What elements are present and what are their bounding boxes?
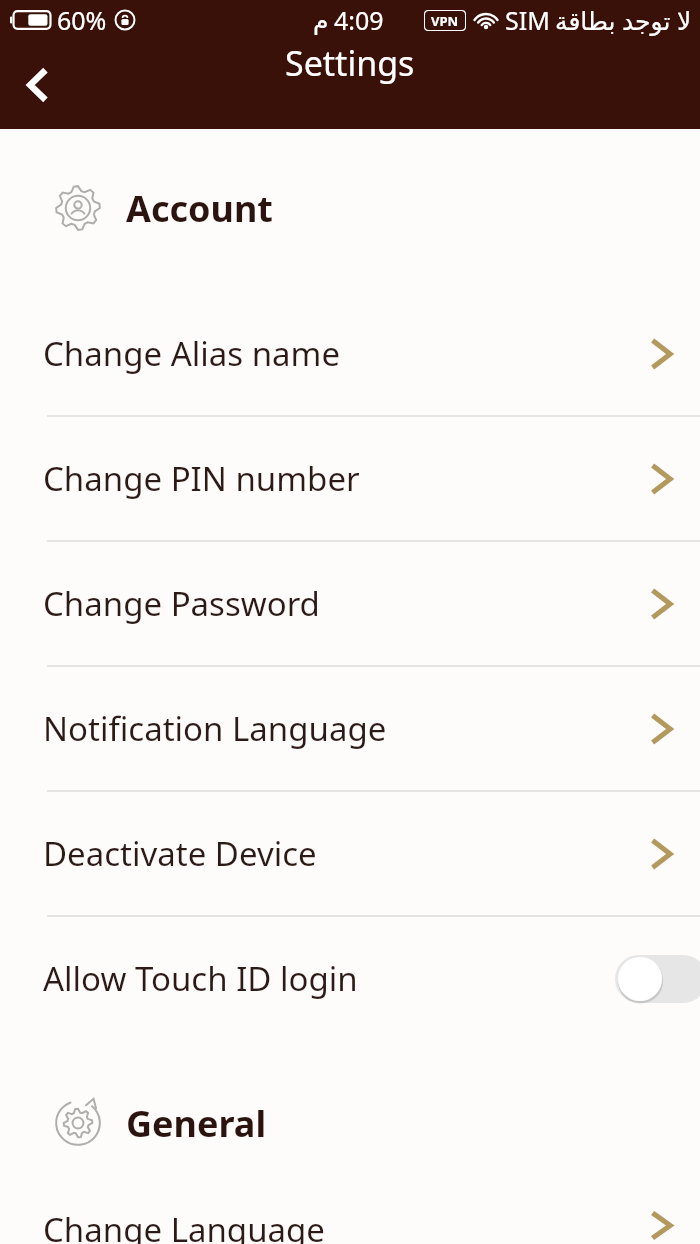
- staticText: Account: [126, 184, 273, 233]
- button[interactable]: Notification Language: [0, 667, 700, 790]
- staticText: Deactivate Device: [43, 831, 317, 876]
- staticText: SIM: [505, 3, 550, 37]
- staticText: لا توجد بطاقة: [555, 3, 692, 37]
- staticText: م: [313, 6, 329, 35]
- button[interactable]: Back: [0, 48, 74, 122]
- staticText: Change Language: [43, 1207, 325, 1244]
- button[interactable]: Allow Touch ID login: [0, 917, 700, 1040]
- staticText: General: [126, 1099, 267, 1148]
- staticText: Change PIN number: [43, 456, 360, 501]
- button[interactable]: Change Alias name: [0, 292, 700, 415]
- staticText: Settings: [285, 40, 415, 86]
- button[interactable]: Change PIN number: [0, 417, 700, 540]
- staticText: 4:09: [334, 3, 384, 37]
- staticText: Change Password: [43, 581, 320, 626]
- button[interactable]: Change Language: [0, 1207, 700, 1244]
- button[interactable]: Deactivate Device: [0, 792, 700, 915]
- staticText: Allow Touch ID login: [43, 956, 358, 1001]
- staticText: Change Alias name: [43, 331, 341, 376]
- staticText: VPN: [431, 12, 459, 30]
- button[interactable]: Change Password: [0, 542, 700, 665]
- staticText: Notification Language: [43, 706, 387, 751]
- other: Allow Touch ID login toggle: [615, 954, 700, 1004]
- staticText: 60%: [57, 3, 107, 37]
